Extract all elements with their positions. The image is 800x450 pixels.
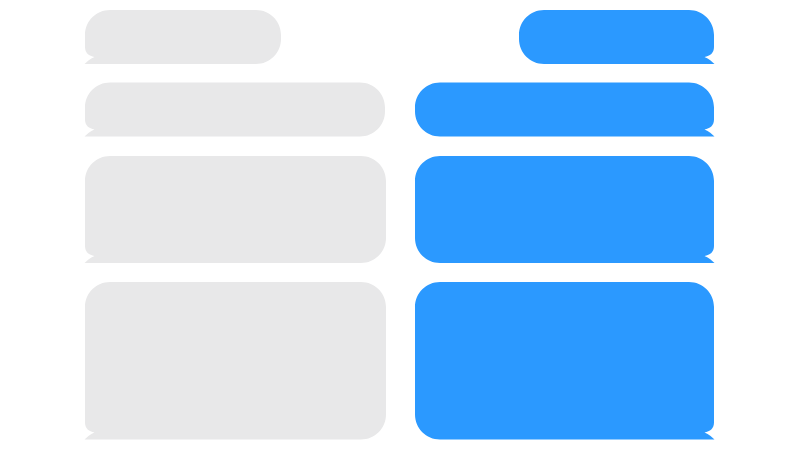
button[interactable]: Conversation messages [0,0,800,450]
